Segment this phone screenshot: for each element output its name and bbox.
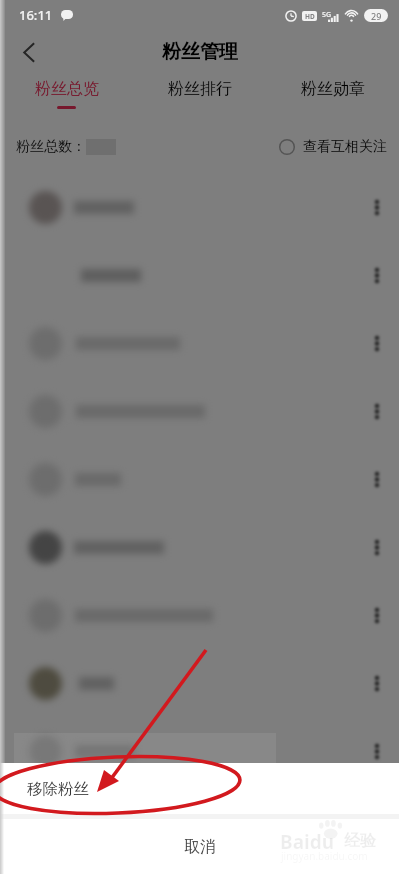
button[interactable]: 查看互相关注 [279,138,387,156]
button[interactable]: More options [0,173,399,241]
button[interactable]: More options [355,525,399,569]
staticText: 移除粉丝 [27,779,89,799]
button[interactable] [0,717,399,785]
button[interactable]: More options [0,445,399,513]
button[interactable] [0,513,399,581]
button[interactable]: More options [0,581,399,649]
staticText: HD [305,12,315,21]
button[interactable]: 移除粉丝 [0,763,399,814]
button[interactable]: More options [0,717,399,785]
staticText: Baidu [280,829,335,855]
button[interactable]: More options [355,321,399,365]
button[interactable]: 粉丝总览 [0,74,133,121]
staticText: 粉丝排行 [168,79,232,99]
button[interactable]: 取消 [0,819,399,874]
button[interactable]: More options [355,389,399,433]
staticText: 29 [371,10,382,22]
button[interactable]: More options [0,309,399,377]
button[interactable]: More options [355,185,399,229]
staticText: 粉丝管理 [162,40,238,64]
button[interactable]: 粉丝排行 [133,74,266,121]
button[interactable]: More options [355,593,399,637]
button[interactable]: More options [355,729,399,773]
button[interactable]: More options [0,513,399,581]
button[interactable]: More options [0,241,399,309]
staticText: 经验 [344,831,376,851]
button[interactable]: 粉丝勋章 [266,74,399,121]
staticText: 取消 [184,837,216,857]
button[interactable] [0,241,399,309]
button[interactable] [0,445,399,513]
button[interactable]: More options [0,377,399,445]
staticText: 查看互相关注 [303,138,387,156]
button[interactable]: More options [355,457,399,501]
button[interactable] [0,581,399,649]
button[interactable] [0,649,399,717]
button[interactable]: Back [5,30,53,74]
staticText: 16:11 [19,6,53,24]
button[interactable] [0,377,399,445]
button[interactable]: More options [0,649,399,717]
staticText: 粉丝总数： [16,138,86,156]
staticText: 粉丝总览 [35,79,99,99]
button[interactable]: More options [355,253,399,297]
button[interactable]: More options [355,661,399,705]
button[interactable] [0,309,399,377]
staticText: 粉丝勋章 [301,79,365,99]
staticText: 5G [322,10,332,20]
button[interactable] [0,173,399,241]
